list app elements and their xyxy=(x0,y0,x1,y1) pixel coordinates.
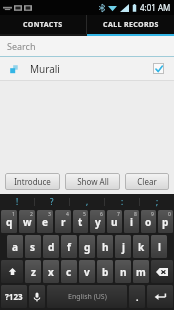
staticText: Murali xyxy=(30,62,153,76)
staticText: i xyxy=(130,215,133,229)
staticText: n xyxy=(120,265,127,279)
staticText: 1 xyxy=(12,211,15,218)
staticText: v xyxy=(84,265,90,279)
staticText: u xyxy=(111,215,118,229)
staticText: c xyxy=(66,265,72,279)
staticText: k xyxy=(138,240,145,254)
button[interactable]: k xyxy=(133,235,149,258)
button[interactable]: x xyxy=(43,260,59,283)
staticText: CALL RECORDS xyxy=(103,20,159,30)
button[interactable]: Symbols xyxy=(1,285,27,308)
staticText: r xyxy=(61,215,66,229)
button[interactable]: Enter xyxy=(147,285,173,308)
button[interactable]: ! xyxy=(0,194,34,209)
staticText: 4 xyxy=(66,211,69,218)
button[interactable]: y xyxy=(90,210,105,233)
staticText: p xyxy=(162,215,169,229)
staticText: ! xyxy=(16,196,19,207)
button[interactable]: d xyxy=(43,235,59,258)
button[interactable]: Clear xyxy=(125,173,169,190)
staticText: e xyxy=(42,215,48,229)
button[interactable]: , xyxy=(70,194,104,209)
button[interactable]: Voice input xyxy=(29,285,45,308)
button[interactable]: ; xyxy=(140,194,174,209)
button[interactable]: h xyxy=(97,235,113,258)
staticText: Search xyxy=(7,40,36,52)
button[interactable]: r xyxy=(55,210,71,233)
button[interactable]: ? xyxy=(35,194,69,209)
button[interactable]: Backspace xyxy=(151,260,173,283)
staticText: 7 xyxy=(117,211,120,218)
button[interactable]: Period xyxy=(129,285,145,308)
button[interactable]: g xyxy=(79,235,95,258)
button[interactable]: l xyxy=(151,235,167,258)
button[interactable]: z xyxy=(25,260,41,283)
button[interactable]: w xyxy=(19,210,35,233)
staticText: 6 xyxy=(100,211,103,218)
button[interactable]: Space xyxy=(47,285,127,308)
staticText: t xyxy=(78,215,83,229)
button[interactable]: : xyxy=(105,194,139,209)
button[interactable]: v xyxy=(79,260,95,283)
staticText: 2 xyxy=(30,211,33,218)
staticText: y xyxy=(95,215,101,229)
button[interactable]: q xyxy=(1,210,17,233)
staticText: . xyxy=(136,291,139,303)
button[interactable]: i xyxy=(124,210,139,233)
staticText: ?123 xyxy=(5,291,23,302)
button[interactable]: u xyxy=(107,210,122,233)
button[interactable]: Murali xyxy=(0,57,174,80)
staticText: 4:01 AM xyxy=(140,2,171,13)
staticText: English (US) xyxy=(68,292,107,302)
staticText: d xyxy=(48,240,55,254)
button[interactable]: p xyxy=(158,210,173,233)
button[interactable]: j xyxy=(115,235,131,258)
staticText: 0 xyxy=(168,211,171,218)
staticText: l xyxy=(158,240,161,254)
staticText: 5 xyxy=(83,211,86,218)
staticText: CONTACTS xyxy=(23,20,63,30)
staticText: x xyxy=(48,265,54,279)
staticText: 8 xyxy=(134,211,137,218)
staticText: g xyxy=(84,240,91,254)
staticText: 9 xyxy=(151,211,154,218)
staticText: j xyxy=(122,240,125,254)
button[interactable]: a xyxy=(7,235,23,258)
button[interactable]: c xyxy=(61,260,77,283)
staticText: ; xyxy=(156,196,159,207)
staticText: h xyxy=(102,240,109,254)
button[interactable]: Shift xyxy=(1,260,23,283)
staticText: o xyxy=(145,215,152,229)
button[interactable]: m xyxy=(133,260,149,283)
button[interactable]: Select contact Murali xyxy=(153,63,164,74)
staticText: w xyxy=(23,215,32,229)
staticText: Clear xyxy=(137,176,157,187)
staticText: m xyxy=(136,265,146,279)
staticText: q xyxy=(6,215,13,229)
button[interactable]: CONTACTS xyxy=(0,15,86,34)
staticText: ? xyxy=(50,196,54,207)
staticText: : xyxy=(121,196,124,207)
button[interactable]: o xyxy=(141,210,156,233)
button[interactable]: s xyxy=(25,235,41,258)
button[interactable]: Search xyxy=(0,36,174,57)
staticText: s xyxy=(30,240,36,254)
staticText: b xyxy=(102,265,109,279)
staticText: , xyxy=(86,196,89,207)
staticText: Show All xyxy=(77,176,109,187)
staticText: a xyxy=(12,240,18,254)
button[interactable]: n xyxy=(115,260,131,283)
button[interactable]: f xyxy=(61,235,77,258)
staticText: 3 xyxy=(48,211,51,218)
staticText: Introduce xyxy=(14,176,51,187)
button[interactable]: e xyxy=(37,210,53,233)
button[interactable]: Introduce xyxy=(5,173,60,190)
button[interactable]: Show All xyxy=(65,173,120,190)
button[interactable]: CALL RECORDS xyxy=(87,15,174,34)
staticText: f xyxy=(67,240,71,254)
button[interactable]: t xyxy=(73,210,88,233)
button[interactable]: b xyxy=(97,260,113,283)
staticText: z xyxy=(31,265,36,279)
